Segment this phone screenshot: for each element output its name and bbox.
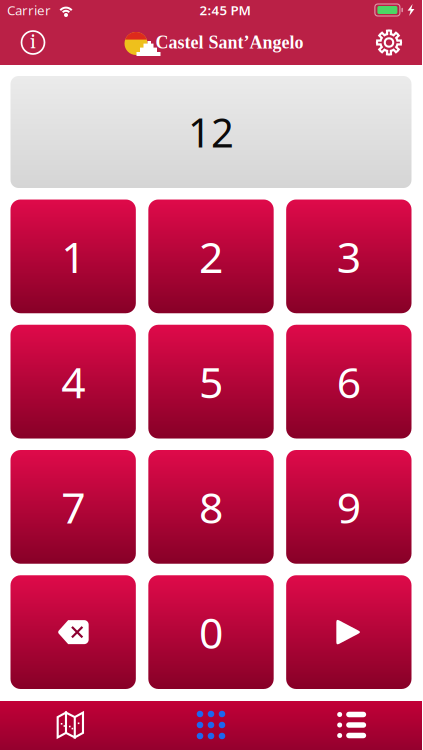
staticText: Castel Sant’Angelo (155, 32, 303, 52)
button[interactable]: Delete (10, 575, 136, 689)
button[interactable]: 6 (286, 325, 411, 439)
staticText: 8 (199, 478, 223, 535)
staticText: 6 (337, 353, 361, 410)
button[interactable]: Map (0, 700, 141, 750)
staticText: 1 (61, 228, 85, 285)
button[interactable]: 7 (10, 450, 136, 564)
button[interactable]: List (281, 700, 422, 750)
button[interactable]: 3 (286, 199, 411, 313)
staticText: 7 (61, 478, 85, 535)
button[interactable]: Play (286, 575, 411, 689)
button[interactable]: 9 (286, 450, 411, 564)
button[interactable]: Settings (367, 20, 411, 64)
staticText: 4 (61, 353, 85, 410)
staticText: 9 (337, 478, 361, 535)
staticText: i (30, 30, 36, 55)
button[interactable]: 2 (148, 199, 274, 313)
button[interactable]: Keypad (141, 700, 281, 750)
staticText: 5 (199, 353, 223, 410)
staticText: Carrier (7, 1, 51, 19)
staticText: 0 (199, 604, 223, 660)
button[interactable]: 5 (148, 325, 274, 439)
button[interactable]: 1 (10, 199, 136, 313)
button[interactable]: 4 (10, 325, 136, 439)
button[interactable]: Info (11, 20, 55, 64)
staticText: 2:45 PM (199, 1, 250, 19)
button[interactable]: 8 (148, 450, 274, 564)
staticText: 2 (199, 228, 223, 285)
staticText: 3 (337, 228, 361, 285)
staticText: 12 (188, 105, 234, 158)
button[interactable]: 0 (148, 575, 274, 689)
